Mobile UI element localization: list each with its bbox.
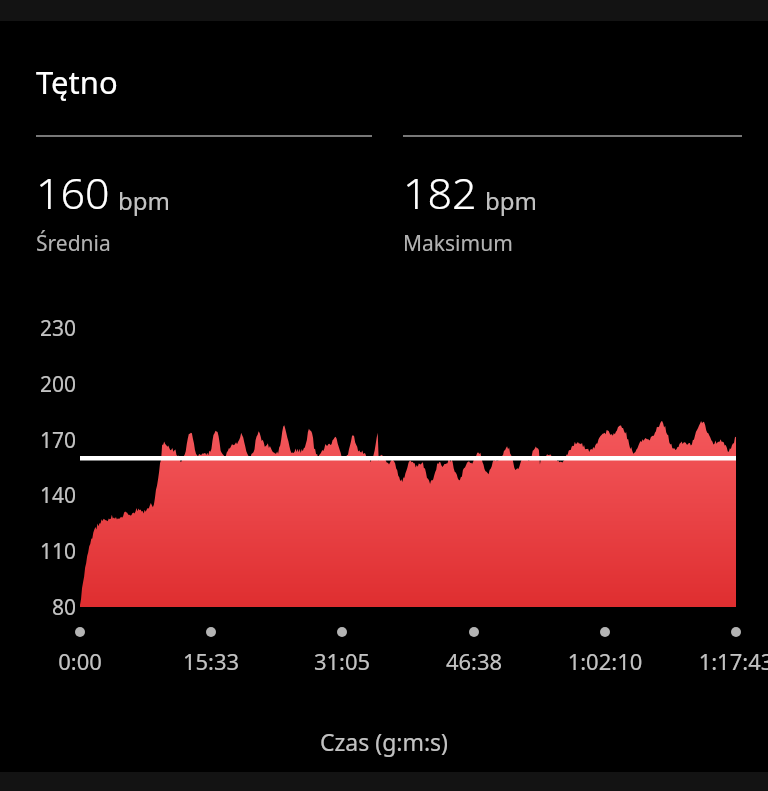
staticText: 46:38 — [410, 646, 538, 676]
staticText: bpm — [485, 184, 537, 217]
button[interactable]: 182 — [403, 163, 743, 258]
staticText: 200 — [28, 370, 76, 399]
staticText: 182 — [403, 163, 477, 222]
staticText: bpm — [118, 184, 170, 217]
staticText: 1:02:10 — [541, 646, 669, 676]
staticText: Średnia — [36, 229, 111, 258]
button[interactable]: 160 — [36, 163, 376, 258]
staticText: 230 — [28, 314, 76, 343]
staticText: 170 — [28, 426, 76, 455]
staticText: 140 — [28, 481, 76, 510]
staticText: 1:17:43 — [672, 646, 768, 676]
staticText: 160 — [36, 163, 110, 222]
staticText: 80 — [28, 593, 76, 622]
staticText: 31:05 — [278, 646, 406, 676]
staticText: Tętno — [36, 61, 118, 103]
staticText: 15:33 — [147, 646, 275, 676]
staticText: Maksimum — [403, 229, 513, 258]
staticText: 110 — [28, 537, 76, 566]
staticText: 0:00 — [16, 646, 144, 676]
staticText: Czas (g:m:s) — [0, 726, 768, 757]
button[interactable]: Heart rate section — [36, 61, 118, 103]
